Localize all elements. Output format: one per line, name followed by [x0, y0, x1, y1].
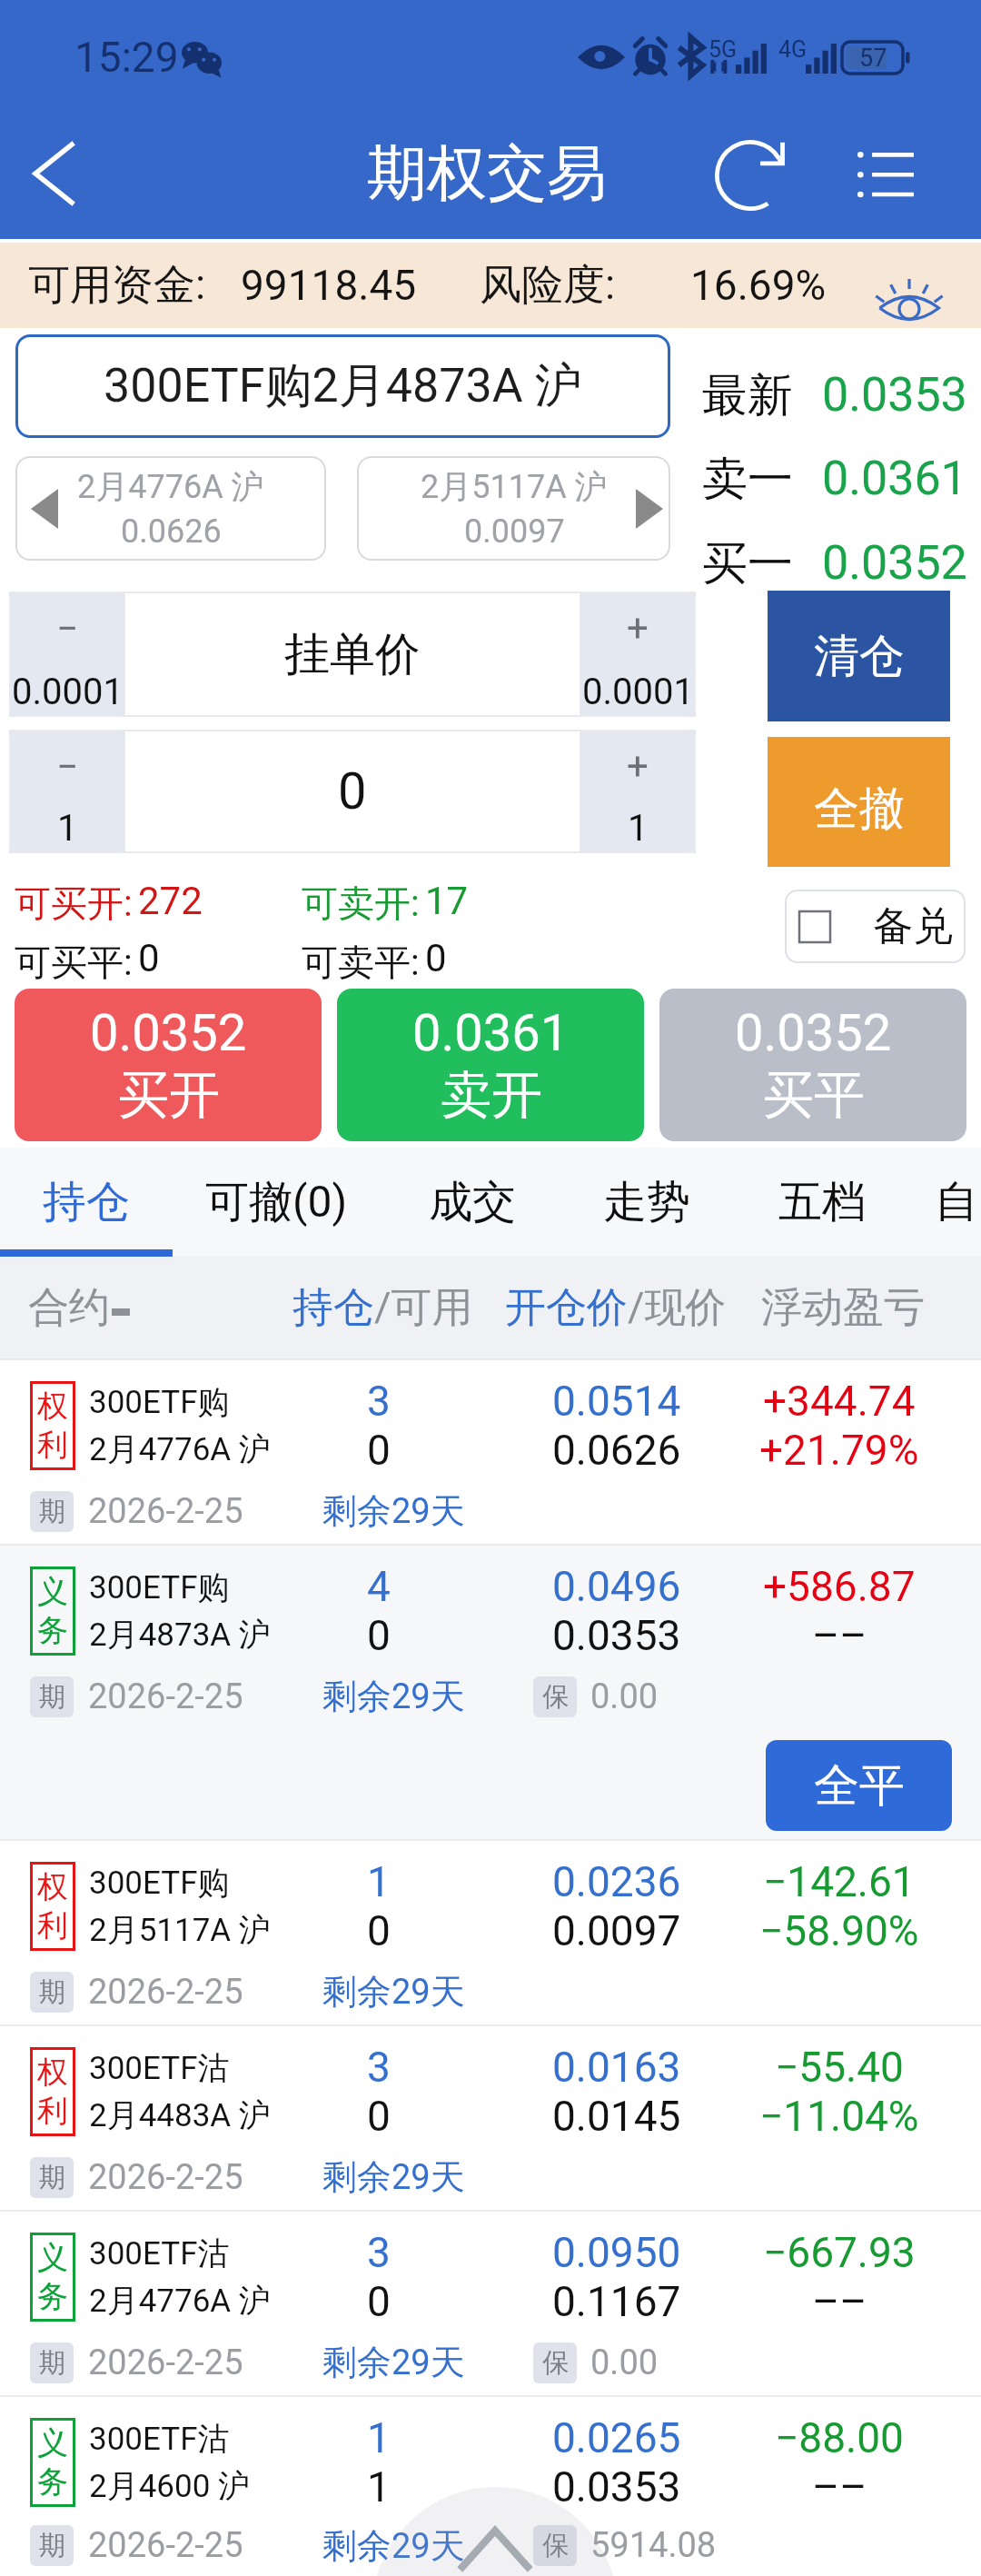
staticText: 2月4873A 沪	[89, 1615, 271, 1655]
button[interactable]: 持仓	[0, 1148, 173, 1257]
staticText: 2026-2-25	[88, 1491, 243, 1532]
button[interactable]: 义	[0, 1544, 981, 1839]
staticText: 3	[367, 2043, 391, 2092]
button[interactable]: 成交	[391, 1148, 554, 1257]
staticText: ––	[812, 1611, 867, 1660]
button[interactable]: 2月4776A 沪	[15, 456, 326, 561]
staticText: 持仓	[292, 1282, 374, 1334]
button[interactable]: 0	[125, 730, 580, 853]
staticText: 2026-2-25	[88, 1676, 243, 1717]
staticText: 浮动盈亏	[761, 1282, 925, 1334]
staticText: 全平	[814, 1757, 905, 1815]
button[interactable]: Back	[0, 107, 107, 239]
staticText: 卖一	[702, 451, 793, 508]
staticText: 0.1167	[552, 2277, 681, 2326]
staticText: 可买平:	[15, 940, 133, 985]
staticText: 300ETF沽	[89, 2048, 230, 2088]
staticText: 可用资金:	[28, 259, 206, 312]
button[interactable]: 可撤(0)	[182, 1148, 371, 1257]
button[interactable]: Scroll to top	[372, 2487, 618, 2576]
staticText: 272	[138, 879, 203, 923]
button[interactable]: Next contract	[618, 456, 681, 561]
staticText: 2月4776A 沪	[89, 2281, 271, 2321]
staticText: 剩余29天	[322, 2524, 465, 2568]
staticText: 0.0950	[552, 2228, 681, 2277]
staticText: 卖开	[441, 1063, 542, 1128]
button[interactable]: Previous contract	[13, 456, 76, 561]
staticText: 0	[367, 2277, 391, 2326]
button[interactable]: 清仓	[768, 591, 950, 721]
staticText: 0	[138, 936, 160, 980]
button[interactable]: 全撤	[768, 737, 950, 867]
staticText: 0.0514	[552, 1377, 681, 1426]
button[interactable]: 权	[0, 1358, 981, 1544]
staticText: 买平	[763, 1063, 865, 1128]
staticText: +586.87	[763, 1562, 916, 1611]
button[interactable]: +	[580, 730, 696, 853]
button[interactable]: 0.0352	[15, 989, 322, 1141]
staticText: 0.0361	[412, 1003, 570, 1063]
button[interactable]: 五档	[740, 1148, 904, 1257]
staticText: 持仓	[43, 1175, 130, 1229]
button[interactable]: Menu	[827, 107, 945, 239]
button[interactable]: Toggle balance visibility	[854, 248, 963, 326]
staticText: 2026-2-25	[88, 2157, 243, 2198]
staticText: 剩余29天	[322, 2341, 465, 2384]
button[interactable]: 0.0361	[337, 989, 644, 1141]
staticText: 0.00	[590, 2342, 659, 2383]
staticText: 2月5117A 沪	[89, 1910, 271, 1950]
button[interactable]: +	[580, 592, 696, 717]
staticText: 期	[39, 1975, 65, 2009]
button[interactable]: Refresh	[690, 107, 810, 239]
staticText: 0.0496	[552, 1562, 681, 1611]
staticText: 剩余29天	[322, 2155, 465, 2199]
button[interactable]: 300ETF购2月4873A 沪	[15, 334, 670, 438]
staticText: 权	[37, 2053, 68, 2092]
button[interactable]: 挂单价	[125, 592, 580, 717]
staticText: 2026-2-25	[88, 2342, 243, 2383]
staticText: 期	[39, 1495, 65, 1528]
staticText: 风险度:	[480, 259, 616, 312]
staticText: 最新	[702, 367, 793, 424]
staticText: 1	[367, 1857, 391, 1906]
staticText: 全撤	[814, 781, 905, 838]
staticText: 0.0626	[121, 512, 222, 551]
staticText: 合约	[28, 1282, 110, 1334]
staticText: −55.40	[775, 2043, 904, 2092]
staticText: 300ETF购	[89, 1567, 230, 1607]
staticText: 0.0145	[552, 2092, 681, 2141]
button[interactable]: −	[9, 730, 125, 853]
staticText: 16.69%	[690, 261, 827, 310]
staticText: 0	[367, 1906, 391, 1955]
button[interactable]: 义	[0, 2210, 981, 2395]
button[interactable]: −	[9, 592, 125, 717]
staticText: 2月4776A 沪	[77, 466, 264, 507]
staticText: 300ETF购	[89, 1863, 230, 1903]
staticText: 1	[367, 2413, 391, 2462]
staticText: 务	[37, 2277, 68, 2316]
staticText: 务	[37, 2462, 68, 2501]
button[interactable]: 0.0352	[659, 989, 966, 1141]
staticText: 0.0353	[822, 367, 967, 423]
staticText: 300ETF沽	[89, 2419, 230, 2459]
button[interactable]: 备兑	[785, 890, 966, 963]
button[interactable]: 义	[0, 2395, 981, 2576]
staticText: 成交	[429, 1175, 516, 1229]
staticText: 义	[37, 1572, 68, 1611]
staticText: −	[56, 744, 79, 789]
staticText: −88.00	[775, 2413, 904, 2462]
staticText: 剩余29天	[322, 1489, 465, 1533]
staticText: 5914.08	[590, 2525, 717, 2566]
button[interactable]: 权	[0, 1839, 981, 2024]
staticText: 0.0097	[464, 512, 565, 551]
staticText: 保	[542, 2346, 569, 2380]
button[interactable]: 权	[0, 2024, 981, 2210]
button[interactable]: 自	[916, 1148, 981, 1257]
staticText: 期	[39, 2161, 65, 2194]
staticText: 可卖开:	[302, 880, 420, 926]
staticText: 剩余29天	[322, 1970, 465, 2014]
button[interactable]: 走势	[565, 1148, 728, 1257]
button[interactable]: 2月5117A 沪	[357, 456, 670, 561]
button[interactable]: 全平	[766, 1740, 952, 1831]
staticText: 可卖平:	[302, 940, 420, 985]
